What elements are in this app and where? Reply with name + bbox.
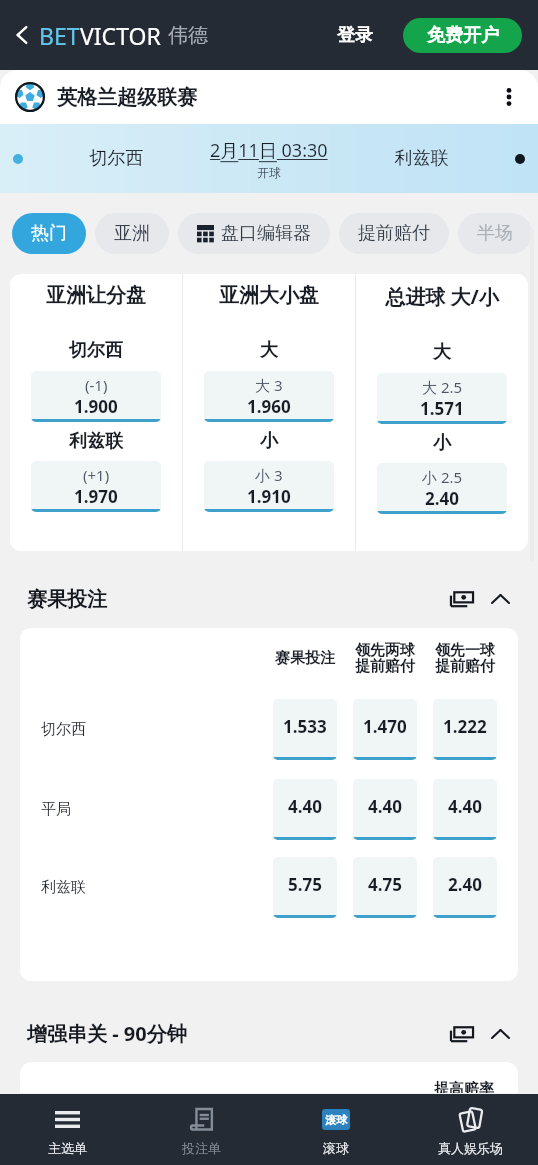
staticText: 2月11日 03:30 <box>210 138 328 163</box>
staticText: 1.470 <box>363 715 407 738</box>
staticText: VICTOR <box>80 20 161 51</box>
staticText: 2.40 <box>425 487 459 510</box>
staticText: 英格兰超级联赛 <box>57 85 197 110</box>
button[interactable]: 半场 <box>458 213 532 254</box>
button[interactable]: (-1) <box>31 371 161 422</box>
staticText: (+1) <box>83 465 110 485</box>
staticText: 利兹联 <box>69 430 123 453</box>
staticText: BET <box>39 20 80 51</box>
staticText: 提前赔付 <box>358 222 430 245</box>
staticText: 小 3 <box>255 465 283 485</box>
button[interactable]: 滚球 <box>268 1094 403 1165</box>
staticText: 利兹联 <box>41 878 86 897</box>
staticText: 小 <box>433 432 451 455</box>
staticText: 提高赔率 <box>434 1080 494 1093</box>
button[interactable]: 大 3 <box>204 371 334 422</box>
staticText: 亚洲让分盘 <box>46 283 146 308</box>
staticText: 免费开户 <box>427 24 499 47</box>
staticText: 1.533 <box>283 715 327 738</box>
staticText: 亚洲 <box>114 222 150 245</box>
button[interactable]: 4.40 <box>433 779 497 840</box>
button[interactable]: 英格兰超级联赛 <box>0 70 538 124</box>
button[interactable]: 1.470 <box>353 699 417 760</box>
staticText: 半场 <box>477 222 513 245</box>
staticText: 大 <box>260 339 278 362</box>
staticText: 主选单 <box>48 1140 87 1156</box>
staticText: 利兹联 <box>328 147 515 170</box>
staticText: 大 <box>433 341 451 364</box>
staticText: 大 3 <box>255 375 283 395</box>
button[interactable]: 提前赔付 <box>339 213 449 254</box>
staticText: 切尔西 <box>69 339 123 362</box>
staticText: 开球 <box>257 165 281 180</box>
staticText: 登录 <box>337 24 373 47</box>
staticText: 4.40 <box>368 795 402 818</box>
staticText: 赛果投注 <box>275 649 335 668</box>
staticText: 赛果投注 <box>27 587 107 612</box>
staticText: 切尔西 <box>23 147 210 170</box>
staticText: 伟德 <box>168 23 208 48</box>
staticText: (-1) <box>85 375 108 395</box>
button[interactable]: 真人娱乐场 <box>403 1094 538 1165</box>
staticText: 小 <box>260 430 278 453</box>
button[interactable]: 登录 <box>331 14 379 57</box>
staticText: 领先一球 提前赔付 <box>435 641 495 675</box>
button[interactable]: 4.40 <box>353 779 417 840</box>
staticText: 2.40 <box>448 873 482 896</box>
staticText: 总进球 大/小 <box>385 283 499 310</box>
staticText: 4.75 <box>368 873 402 896</box>
staticText: 盘口编辑器 <box>221 222 311 245</box>
staticText: 领先两球 提前赔付 <box>355 641 415 675</box>
staticText: 切尔西 <box>41 720 86 739</box>
button[interactable]: 1.222 <box>433 699 497 760</box>
staticText: 1.571 <box>420 397 464 420</box>
staticText: 1.960 <box>247 395 291 418</box>
button[interactable]: 投注单 <box>134 1094 268 1165</box>
button[interactable]: Back <box>5 18 39 52</box>
staticText: 亚洲大小盘 <box>219 283 319 308</box>
staticText: 滚球 <box>325 1113 347 1127</box>
button[interactable]: Collapse <box>486 1020 514 1048</box>
button[interactable]: 热门 <box>12 213 86 254</box>
button[interactable]: (+1) <box>31 461 161 512</box>
staticText: 4.40 <box>288 795 322 818</box>
button[interactable]: Collapse <box>486 585 514 613</box>
button[interactable]: 4.75 <box>353 857 417 918</box>
button[interactable]: 切尔西 <box>0 124 538 193</box>
staticText: 5.75 <box>288 873 322 896</box>
button[interactable]: 盘口编辑器 <box>178 213 330 254</box>
button[interactable]: 免费开户 <box>403 18 522 53</box>
staticText: 增强串关 - 90分钟 <box>27 1020 187 1047</box>
button[interactable]: Cash out <box>446 1018 478 1050</box>
button[interactable]: 亚洲 <box>95 213 169 254</box>
button[interactable]: 5.75 <box>273 857 337 918</box>
button[interactable]: More options <box>493 81 525 113</box>
button[interactable]: 大 2.5 <box>377 373 507 424</box>
staticText: 小 2.5 <box>422 467 463 487</box>
staticText: 真人娱乐场 <box>438 1140 503 1156</box>
button[interactable]: 主选单 <box>0 1094 134 1165</box>
button[interactable]: 小 2.5 <box>377 463 507 514</box>
staticText: 投注单 <box>182 1140 221 1156</box>
button[interactable]: 2.40 <box>433 857 497 918</box>
staticText: 1.900 <box>74 395 118 418</box>
staticText: 滚球 <box>323 1140 349 1156</box>
staticText: 平局 <box>41 800 71 819</box>
staticText: 大 2.5 <box>422 377 463 397</box>
button[interactable]: 1.533 <box>273 699 337 760</box>
button[interactable]: 4.40 <box>273 779 337 840</box>
staticText: 4.40 <box>448 795 482 818</box>
staticText: 1.910 <box>247 485 291 508</box>
button[interactable]: Cash out <box>446 583 478 615</box>
staticText: 1.222 <box>443 715 487 738</box>
button[interactable]: 小 3 <box>204 461 334 512</box>
staticText: 热门 <box>31 222 67 245</box>
staticText: 1.970 <box>74 485 118 508</box>
